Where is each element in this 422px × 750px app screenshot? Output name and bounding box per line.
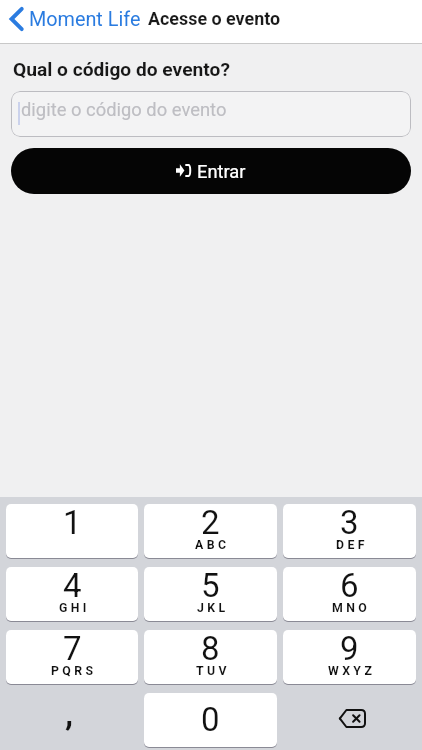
- staticText: ,: [65, 694, 74, 733]
- staticText: 4: [63, 566, 82, 605]
- staticText: 7: [63, 629, 82, 668]
- button[interactable]: 0: [144, 693, 277, 747]
- staticText: digite o código do evento: [21, 99, 227, 121]
- staticText: 2: [201, 503, 220, 542]
- staticText: 9: [340, 629, 359, 668]
- staticText: GHI: [59, 601, 90, 615]
- staticText: TUV: [196, 664, 230, 678]
- staticText: Qual o código do evento?: [13, 58, 230, 81]
- button[interactable]: Backspace: [283, 693, 416, 747]
- staticText: Acesse o evento: [148, 8, 281, 29]
- staticText: ABC: [195, 538, 230, 552]
- button[interactable]: digite o código do evento: [11, 91, 411, 137]
- staticText: JKL: [197, 601, 229, 615]
- staticText: 3: [340, 503, 359, 542]
- staticText: PQRS: [51, 664, 97, 678]
- button[interactable]: 8: [144, 630, 277, 684]
- button[interactable]: 6: [283, 567, 416, 621]
- button[interactable]: Entrar: [11, 148, 411, 194]
- staticText: 1: [63, 503, 82, 542]
- button[interactable]: Moment Life: [8, 6, 141, 30]
- staticText: Entrar: [197, 161, 246, 182]
- button[interactable]: 7: [6, 630, 138, 684]
- staticText: 0: [201, 700, 220, 739]
- button[interactable]: 2: [144, 504, 277, 558]
- button[interactable]: ,: [6, 693, 138, 747]
- staticText: 8: [201, 629, 220, 668]
- staticText: 6: [340, 566, 359, 605]
- staticText: 5: [201, 566, 220, 605]
- button[interactable]: 9: [283, 630, 416, 684]
- button[interactable]: 5: [144, 567, 277, 621]
- staticText: Moment Life: [29, 8, 141, 31]
- staticText: WXYZ: [328, 664, 376, 678]
- button[interactable]: 1: [6, 504, 138, 558]
- staticText: DEF: [336, 538, 368, 552]
- staticText: MNO: [332, 601, 371, 615]
- button[interactable]: 4: [6, 567, 138, 621]
- button[interactable]: 3: [283, 504, 416, 558]
